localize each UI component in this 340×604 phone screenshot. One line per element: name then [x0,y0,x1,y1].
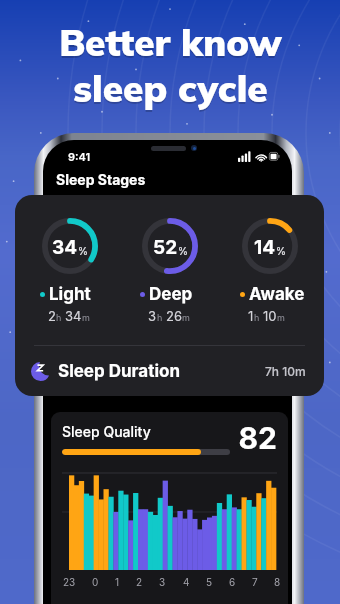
staticText: 2 [48,308,56,324]
staticText: sleep cycle [73,67,268,113]
staticText: 10 [263,308,277,324]
staticText: 34 [65,308,82,324]
staticText: Sleep Duration [58,361,180,382]
staticText: Awake [249,284,305,305]
other: Sleep [31,362,50,381]
staticText: h [157,312,163,323]
staticText: h [254,312,260,323]
staticText: Sleep Quality [62,423,151,440]
staticText: 1 [115,576,120,588]
staticText: 6 [229,576,236,588]
staticText: Better know [59,19,282,65]
staticText: 5 [206,576,213,588]
staticText: % [78,245,88,257]
staticText: 82 [237,420,277,456]
staticText: 4 [183,576,190,588]
staticText: 9:41 [68,150,91,163]
staticText: h [56,312,62,323]
staticText: 7h 10m [265,364,306,379]
staticText: 52 [153,236,178,259]
staticText: Better know [59,21,282,67]
staticText: 0 [92,576,99,588]
staticText: 14 [254,236,276,259]
staticText: 26 [166,308,182,324]
staticText: 7 [252,576,258,588]
staticText: m [82,312,90,323]
staticText: 3 [148,308,157,324]
button[interactable]: Sleep [15,346,324,396]
staticText: m [277,312,285,323]
staticText: 2 [136,576,143,588]
staticText: 8 [274,576,281,588]
staticText: Sleep Stages [56,171,146,188]
staticText: 3 [159,576,166,588]
staticText: sleep cycle [73,65,268,111]
staticText: % [178,245,188,257]
staticText: 23 [63,576,76,588]
staticText: 34 [52,236,78,259]
staticText: 1 [248,308,254,324]
staticText: m [182,312,190,323]
staticText: Deep [149,284,193,305]
staticText: Light [49,284,91,305]
staticText: % [276,245,286,257]
